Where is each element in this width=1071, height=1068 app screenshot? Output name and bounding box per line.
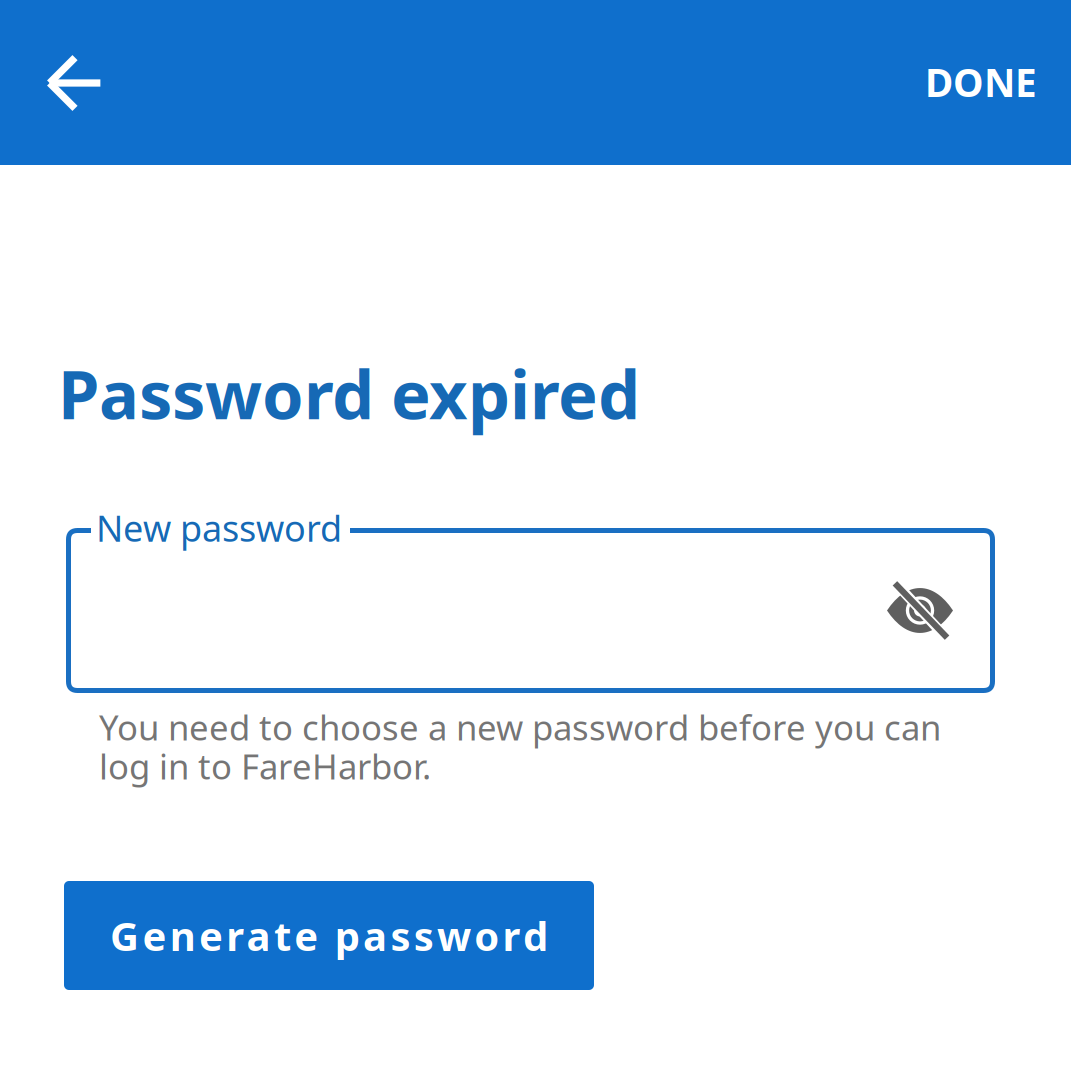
button[interactable]: Generate password xyxy=(64,881,594,990)
staticText: You need to choose a new password before… xyxy=(99,704,941,789)
button[interactable]: Show password xyxy=(865,555,975,665)
button[interactable]: Back xyxy=(19,27,131,139)
staticText: Generate password xyxy=(110,909,548,962)
staticText: DONE xyxy=(925,56,1037,108)
staticText: Password expired xyxy=(58,349,640,437)
button[interactable]: DONE xyxy=(896,26,1066,138)
button[interactable]: New password xyxy=(66,528,995,693)
staticText: New password xyxy=(96,504,342,552)
